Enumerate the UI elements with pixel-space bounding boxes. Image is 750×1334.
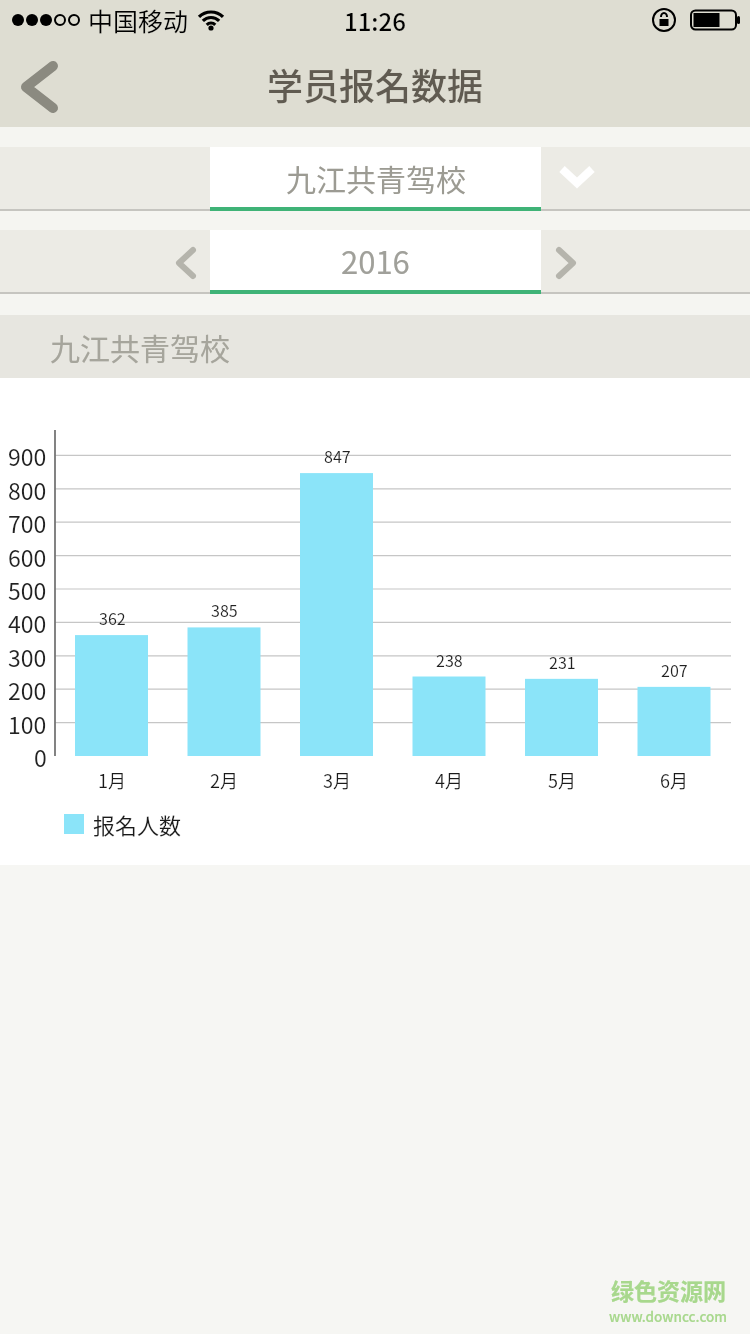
staticText: 3月 xyxy=(323,767,351,793)
staticText: 238 xyxy=(436,648,463,671)
staticText: 学员报名数据 xyxy=(267,58,484,110)
staticText: 九江共青驾校 xyxy=(286,156,466,199)
staticText: 362 xyxy=(99,606,126,629)
staticText: 6月 xyxy=(660,767,688,793)
staticText: 231 xyxy=(549,650,576,673)
staticText: 5月 xyxy=(548,767,576,793)
staticText: 11:26 xyxy=(344,3,406,38)
staticText: 100 xyxy=(8,707,47,739)
staticText: www.downcc.com xyxy=(609,1306,728,1326)
staticText: 0 xyxy=(34,740,47,772)
staticText: 847 xyxy=(324,444,351,467)
staticText: 绿色资源网 xyxy=(611,1273,726,1306)
staticText: 207 xyxy=(661,658,688,681)
staticText: 600 xyxy=(8,540,47,572)
staticText: 中国移动 xyxy=(88,2,189,38)
staticText: 2016 xyxy=(341,238,410,283)
staticText: 385 xyxy=(211,598,238,621)
staticText: 九江共青驾校 xyxy=(50,325,230,368)
staticText: 900 xyxy=(8,439,47,471)
staticText: 500 xyxy=(8,573,47,605)
staticText: 报名人数 xyxy=(93,808,182,838)
staticText: 4月 xyxy=(435,767,463,793)
staticText: 800 xyxy=(8,473,47,505)
staticText: 1月 xyxy=(98,767,126,793)
staticText: 400 xyxy=(8,606,47,638)
staticText: 200 xyxy=(8,673,47,705)
staticText: 300 xyxy=(8,640,47,672)
staticText: 2月 xyxy=(210,767,238,793)
staticText: 700 xyxy=(8,506,47,538)
